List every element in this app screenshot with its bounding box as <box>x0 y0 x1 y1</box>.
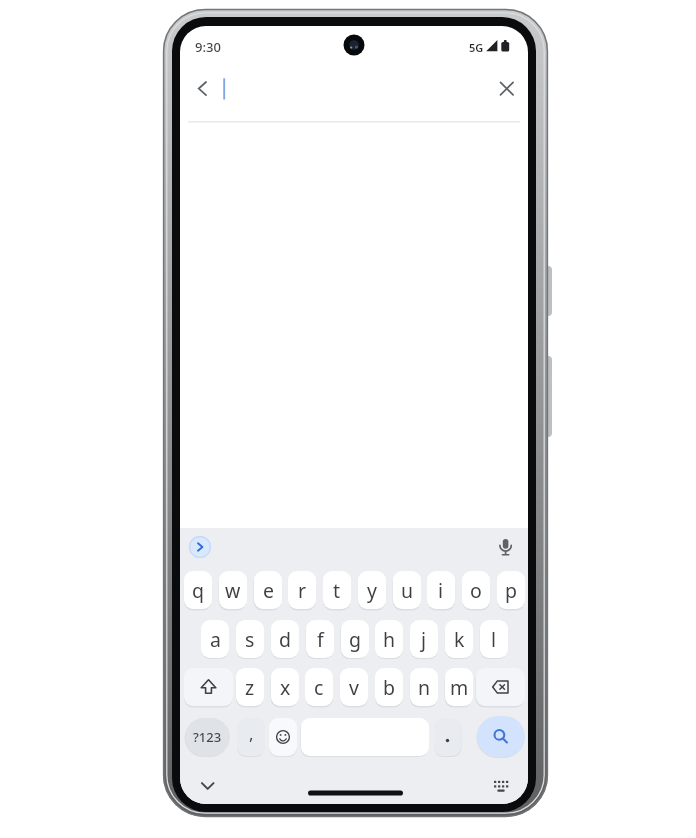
staticText: z <box>245 674 255 701</box>
staticText: w <box>225 577 241 604</box>
staticText: t <box>333 577 341 604</box>
button[interactable]: p <box>497 571 525 609</box>
staticText: n <box>418 674 431 701</box>
button[interactable] <box>486 771 517 801</box>
staticText: g <box>349 626 361 653</box>
staticText: e <box>263 577 274 604</box>
button[interactable]: u <box>393 571 421 609</box>
staticText: f <box>317 626 324 653</box>
staticText: 9:30 <box>195 38 221 56</box>
staticText: c <box>314 674 324 701</box>
staticText: r <box>298 577 307 604</box>
staticText: i <box>438 577 444 604</box>
button[interactable]: a <box>201 620 229 658</box>
staticText: s <box>245 626 255 653</box>
button[interactable]: k <box>445 620 473 658</box>
button[interactable] <box>434 718 461 756</box>
button[interactable]: i <box>427 571 455 609</box>
button[interactable]: h <box>375 620 403 658</box>
button[interactable]: m <box>445 668 473 706</box>
staticText: d <box>279 626 291 653</box>
button[interactable] <box>269 718 297 756</box>
button[interactable]: , <box>237 718 265 756</box>
button[interactable]: j <box>410 620 438 658</box>
button[interactable] <box>476 668 525 706</box>
staticText: ?123 <box>193 728 222 746</box>
button[interactable] <box>492 533 520 561</box>
staticText: p <box>505 577 517 604</box>
button[interactable]: q <box>184 571 212 609</box>
button[interactable]: b <box>375 668 403 706</box>
button[interactable]: g <box>341 620 369 658</box>
staticText: u <box>401 577 414 604</box>
button[interactable]: e <box>254 571 282 609</box>
staticText: j <box>421 626 427 653</box>
button[interactable] <box>187 534 213 560</box>
button[interactable] <box>186 71 220 105</box>
button[interactable]: t <box>323 571 351 609</box>
staticText: o <box>470 577 482 604</box>
button[interactable]: x <box>271 668 299 706</box>
staticText: x <box>280 674 291 701</box>
button[interactable] <box>192 771 223 801</box>
staticText: k <box>454 626 465 653</box>
staticText: m <box>450 674 469 701</box>
staticText: , <box>249 722 254 745</box>
button[interactable] <box>184 668 233 706</box>
button[interactable]: f <box>306 620 334 658</box>
staticText: v <box>349 674 359 701</box>
button[interactable]: w <box>219 571 247 609</box>
button[interactable]: y <box>358 571 386 609</box>
button[interactable]: s <box>236 620 264 658</box>
button[interactable]: v <box>340 668 368 706</box>
staticText: l <box>491 626 497 653</box>
button[interactable] <box>477 716 525 757</box>
staticText: b <box>383 674 395 701</box>
button[interactable] <box>490 71 524 105</box>
staticText: 5G <box>469 40 484 55</box>
button[interactable]: c <box>305 668 333 706</box>
button[interactable]: o <box>462 571 490 609</box>
button[interactable]: l <box>480 620 508 658</box>
button[interactable]: d <box>271 620 299 658</box>
staticText: q <box>192 577 204 604</box>
staticText: a <box>210 626 221 653</box>
button[interactable]: ?123 <box>185 718 230 756</box>
staticText: h <box>383 626 396 653</box>
button[interactable]: z <box>236 668 264 706</box>
button[interactable]: n <box>410 668 438 706</box>
button[interactable]: r <box>288 571 316 609</box>
staticText: y <box>367 577 377 604</box>
